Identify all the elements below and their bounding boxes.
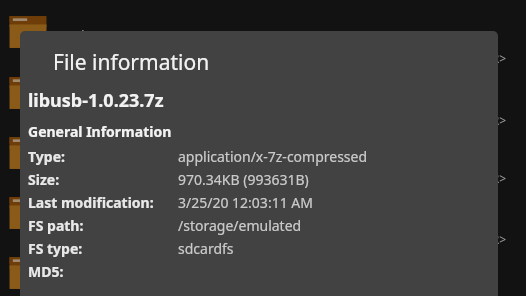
staticText: DIR> bbox=[479, 50, 507, 66]
staticText: DIR> bbox=[479, 112, 507, 128]
button[interactable]: Folder bbox=[7, 134, 49, 172]
button[interactable]: Last modification: bbox=[20, 191, 498, 214]
staticText: sdcardfs bbox=[178, 239, 234, 258]
staticText: FS type: bbox=[28, 239, 83, 258]
staticText: DIR> bbox=[479, 231, 507, 247]
staticText: /storage/emulated bbox=[178, 216, 302, 235]
button[interactable]: Size: bbox=[20, 168, 498, 191]
staticText: Alarms bbox=[72, 26, 118, 45]
button[interactable]: FS type: bbox=[20, 237, 498, 260]
staticText: FS path: bbox=[28, 216, 84, 235]
staticText: MD5: bbox=[28, 262, 64, 281]
staticText: DIR> bbox=[479, 170, 507, 186]
staticText: libusb-1.0.23.7z bbox=[28, 88, 164, 113]
button[interactable]: Type: bbox=[20, 145, 498, 168]
button[interactable]: MD5: bbox=[20, 260, 498, 283]
staticText: 970.34KB (993631B) bbox=[178, 170, 309, 189]
staticText: Type: bbox=[28, 147, 65, 166]
button[interactable]: Folder bbox=[7, 13, 49, 51]
staticText: 3/25/20 12:03:11 AM bbox=[178, 193, 313, 212]
staticText: Last modification: bbox=[28, 193, 154, 212]
button[interactable]: FS path: bbox=[20, 214, 498, 237]
button[interactable]: Folder bbox=[7, 254, 49, 292]
staticText: General Information bbox=[28, 122, 172, 141]
button[interactable]: Folder bbox=[7, 74, 49, 112]
staticText: File information bbox=[53, 48, 210, 77]
button[interactable]: Folder bbox=[7, 194, 49, 232]
staticText: Size: bbox=[28, 170, 60, 189]
staticText: application/x-7z-compressed bbox=[178, 147, 368, 166]
